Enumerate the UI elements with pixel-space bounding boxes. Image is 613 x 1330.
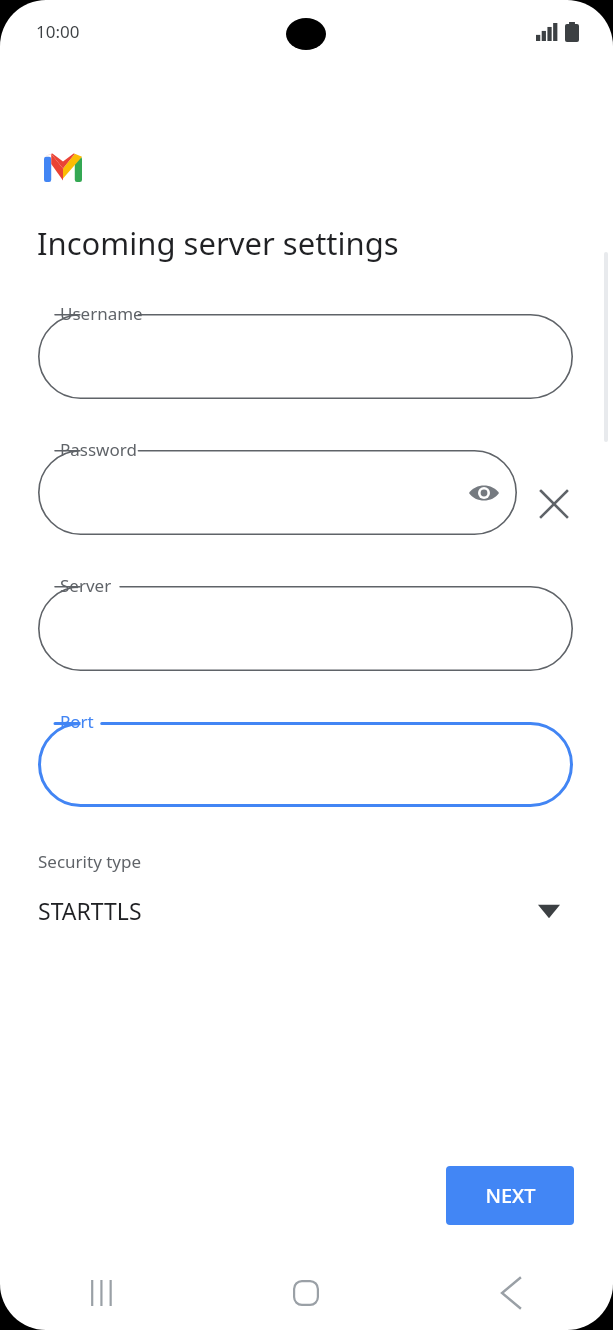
button[interactable]: Recent apps [0,1262,204,1324]
staticText: Username [60,302,143,325]
staticText: Security type [38,850,142,873]
staticText: 10:00 [36,20,80,43]
staticText: Port [60,710,94,733]
staticText: Server [60,574,112,597]
button[interactable]: Back [408,1262,613,1324]
button[interactable] [38,450,517,535]
button[interactable]: Home [204,1262,408,1324]
staticText: Incoming server settings [37,222,399,264]
button[interactable]: Clear [532,482,576,526]
button[interactable] [38,722,573,807]
button[interactable] [38,586,573,671]
staticText: STARTTLS [38,895,142,926]
button[interactable] [38,314,573,399]
button[interactable]: Show password [462,471,506,515]
button[interactable]: NEXT [446,1166,574,1225]
staticText: Password [60,438,137,461]
staticText: NEXT [485,1182,536,1209]
button[interactable]: Security type [0,840,613,940]
